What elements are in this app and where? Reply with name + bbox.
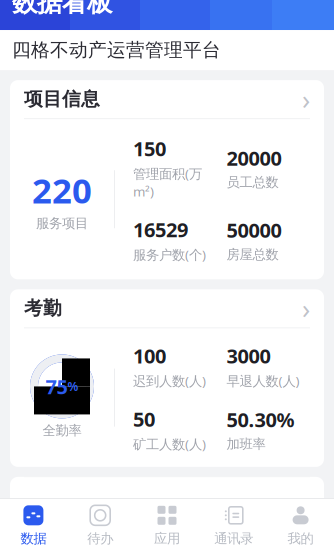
staticText: 50 bbox=[133, 406, 155, 432]
staticText: 应用 bbox=[154, 530, 180, 547]
staticText: 50.30% bbox=[226, 406, 294, 433]
staticText: 20000 bbox=[226, 145, 281, 171]
staticText: 220 bbox=[32, 167, 92, 213]
button[interactable]: 应用 bbox=[134, 499, 200, 552]
button[interactable]: 待办 bbox=[67, 499, 134, 552]
staticText: 服务项目 bbox=[36, 215, 88, 231]
staticText: 数据看板 bbox=[12, 0, 112, 18]
staticText: 50000 bbox=[226, 217, 281, 243]
staticText: 待办 bbox=[87, 530, 113, 547]
button[interactable]: 数据 bbox=[0, 499, 67, 552]
staticText: 全勤率 bbox=[42, 422, 81, 439]
staticText: 150 bbox=[133, 135, 166, 162]
staticText: 早退人数(人) bbox=[226, 372, 299, 390]
staticText: 项目信息 bbox=[24, 88, 100, 111]
staticText: 数据 bbox=[20, 530, 46, 547]
staticText: 我的 bbox=[288, 530, 314, 547]
staticText: 考勤 bbox=[24, 297, 62, 320]
staticText: 263.23 bbox=[133, 491, 194, 518]
staticText: 服务户数(个) bbox=[133, 246, 206, 263]
staticText: 本月支出(万) bbox=[226, 521, 299, 538]
staticText: 管理面积(万m²) bbox=[133, 165, 202, 200]
button[interactable]: 项目信息 bbox=[10, 80, 324, 118]
staticText: 收入 bbox=[24, 446, 62, 469]
button[interactable]: 通讯录 bbox=[200, 499, 267, 552]
button[interactable]: 收入 bbox=[10, 438, 324, 476]
staticText: 员工总数 bbox=[226, 174, 278, 191]
button[interactable]: 考勤 bbox=[10, 289, 324, 327]
staticText: 矿工人数(人) bbox=[133, 435, 206, 453]
staticText: 75 bbox=[45, 373, 67, 400]
staticText: 本月收入(万) bbox=[133, 521, 206, 538]
staticText: 房屋总数 bbox=[226, 246, 278, 263]
staticText: 迟到人数(人) bbox=[133, 372, 206, 390]
staticText: › bbox=[302, 439, 310, 475]
staticText: 3000 bbox=[226, 342, 270, 369]
staticText: 56.32 bbox=[226, 491, 276, 518]
staticText: % bbox=[67, 378, 78, 394]
button[interactable]: 我的 bbox=[267, 499, 334, 552]
staticText: 加班率 bbox=[226, 436, 265, 452]
staticText: 16529 bbox=[133, 216, 188, 243]
staticText: 100 bbox=[133, 342, 166, 369]
staticText: 四格不动产运营管理平台 bbox=[12, 39, 221, 62]
staticText: › bbox=[302, 291, 310, 326]
staticText: 通讯录 bbox=[214, 530, 253, 547]
staticText: › bbox=[302, 81, 310, 117]
